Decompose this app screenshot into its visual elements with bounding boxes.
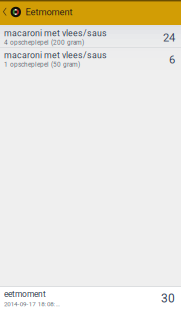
staticText: macaroni met vlees/saus: [4, 50, 107, 60]
staticText: 4 opscheplepel (200 gram): [4, 39, 84, 46]
staticText: eetmoment: [4, 289, 46, 299]
staticText: 30: [161, 291, 175, 306]
button[interactable]: macaroni met vlees/saus: [0, 48, 181, 70]
button[interactable]: Back: [0, 0, 11, 24]
button[interactable]: macaroni met vlees/saus: [0, 25, 181, 47]
staticText: macaroni met vlees/saus: [4, 28, 107, 38]
staticText: 6: [169, 53, 175, 66]
staticText: 24: [163, 31, 175, 44]
staticText: 1 opscheplepel (50 gram): [4, 61, 80, 68]
staticText: Eetmoment: [25, 6, 72, 17]
staticText: 2014-09-17 18:08:16: [4, 300, 62, 308]
